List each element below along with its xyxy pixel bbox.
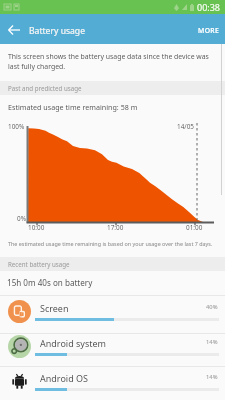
- staticText: 14%: [206, 338, 218, 346]
- button[interactable]: Android OS: [0, 366, 225, 400]
- staticText: Android OS: [40, 372, 88, 384]
- staticText: 00:38: [197, 1, 221, 13]
- staticText: Past and predicted usage: [8, 84, 82, 92]
- staticText: 14/05: [177, 122, 194, 131]
- button[interactable]: Android system: [0, 331, 225, 367]
- staticText: Recent battery usage: [8, 260, 70, 268]
- button[interactable]: Screen: [0, 296, 225, 332]
- staticText: The estimated usage time remaining is ba…: [8, 240, 213, 247]
- staticText: 100%: [8, 122, 25, 131]
- staticText: Battery usage: [29, 25, 86, 37]
- staticText: 01:00: [186, 223, 203, 232]
- staticText: Estimated usage time remaining: 58 m: [8, 102, 138, 112]
- staticText: 15h 0m 40s on battery: [7, 277, 93, 288]
- staticText: 40%: [206, 303, 218, 311]
- button[interactable]: MORE: [192, 17, 225, 42]
- staticText: 10:00: [28, 223, 45, 232]
- staticText: Screen: [40, 302, 69, 314]
- button[interactable]: Back: [0, 16, 27, 43]
- staticText: MORE: [198, 26, 220, 35]
- staticText: This screen shows the battery usage data…: [8, 52, 213, 71]
- staticText: 0%: [17, 214, 26, 223]
- staticText: 17:00: [107, 223, 124, 232]
- staticText: Android system: [40, 337, 106, 349]
- staticText: 14%: [206, 373, 218, 381]
